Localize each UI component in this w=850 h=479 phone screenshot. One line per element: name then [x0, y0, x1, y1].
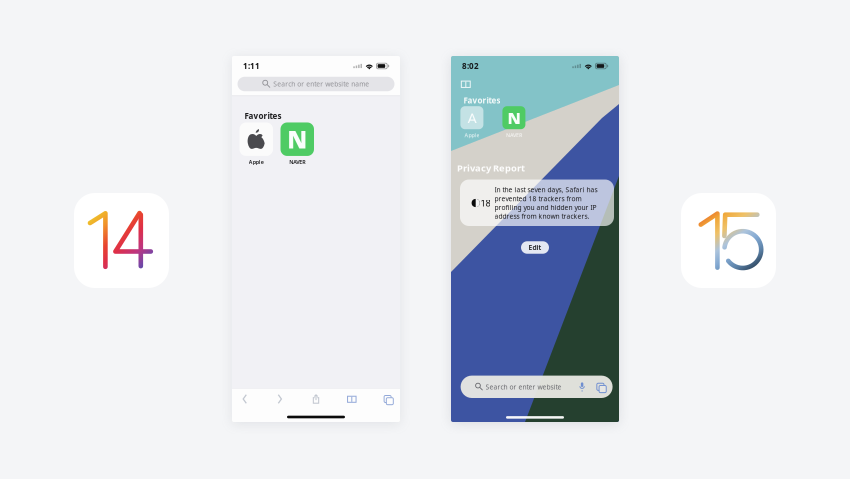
- button[interactable]: Bookmarks: [347, 395, 357, 403]
- button[interactable]: Search or enter website: [461, 376, 613, 398]
- button[interactable]: Edit: [521, 241, 549, 254]
- button[interactable]: Apple: [239, 122, 273, 166]
- button[interactable]: A: [460, 106, 483, 139]
- button[interactable]: Back: [242, 395, 246, 403]
- button[interactable]: Share: [313, 394, 319, 404]
- staticText: 18: [480, 197, 490, 209]
- staticText: N: [287, 123, 307, 155]
- staticText: Search or enter website: [486, 382, 562, 391]
- staticText: Apple: [464, 132, 479, 139]
- staticText: Favorites: [244, 111, 281, 121]
- button[interactable]: Tabs: [383, 394, 392, 404]
- staticText: Apple: [249, 158, 264, 166]
- button[interactable]: N: [280, 122, 314, 166]
- staticText: Favorites: [463, 95, 500, 106]
- staticText: A: [467, 108, 476, 127]
- button[interactable]: Bookmarks: [459, 78, 473, 90]
- staticText: In the last seven days, Safari has preve…: [494, 185, 597, 221]
- staticText: Edit: [528, 243, 541, 252]
- button[interactable]: Forward: [278, 395, 282, 403]
- button[interactable]: N: [502, 106, 525, 139]
- staticText: 8:02: [462, 61, 479, 71]
- button[interactable]: Search or enter website name: [237, 77, 394, 91]
- staticText: Privacy Report: [457, 162, 525, 174]
- staticText: N: [507, 107, 520, 128]
- staticText: 1:11: [243, 61, 260, 71]
- staticText: NAVER: [289, 158, 305, 166]
- staticText: Search or enter website name: [273, 80, 369, 88]
- staticText: NAVER: [506, 132, 522, 139]
